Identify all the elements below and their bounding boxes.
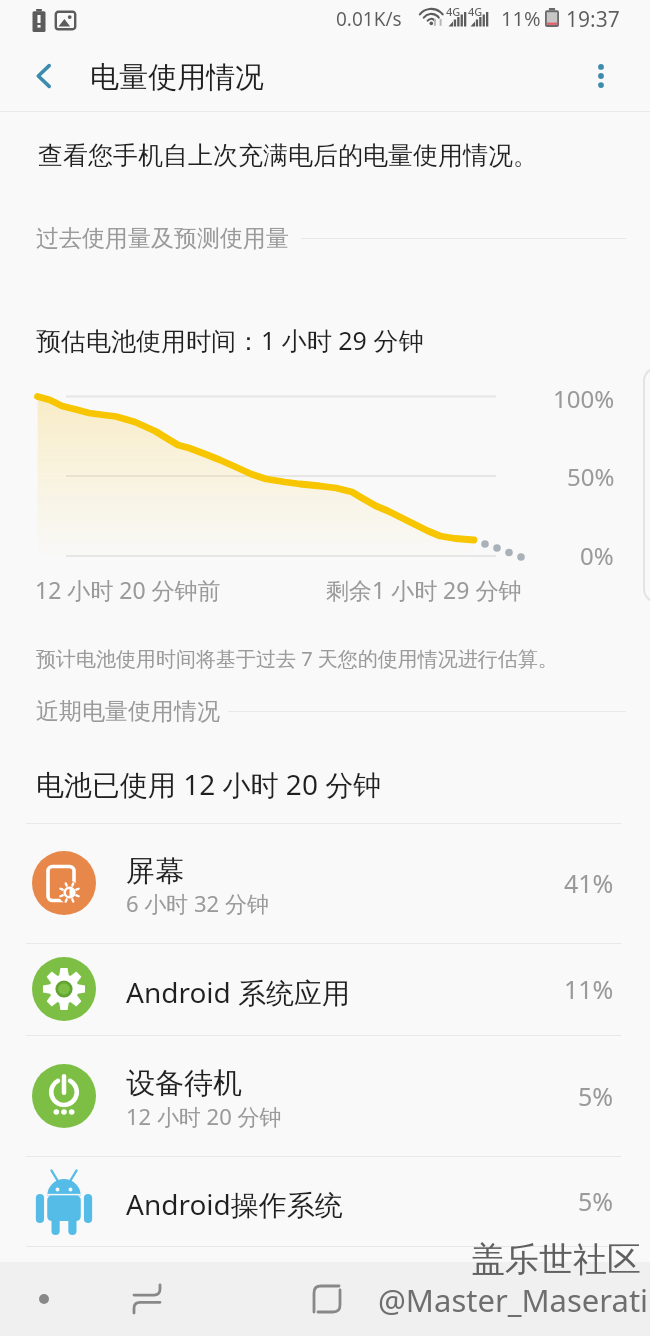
staticText: 100% xyxy=(553,382,615,415)
staticText: 预计电池使用时间将基于过去 7 天您的使用情况进行估算。 xyxy=(36,645,558,672)
staticText: 查看您手机自上次充满电后的电量使用情况。 xyxy=(38,140,538,171)
staticText: 5% xyxy=(578,1184,614,1218)
staticText: 过去使用量及预测使用量 xyxy=(36,224,289,253)
staticText: 41% xyxy=(564,866,614,900)
staticText: 屏幕 xyxy=(126,853,184,890)
staticText: Android操作系统 xyxy=(126,1185,343,1223)
staticText: 19:37 xyxy=(566,5,620,34)
staticText: 12 小时 20 分钟前 xyxy=(35,574,221,605)
button[interactable]: 设备待机 xyxy=(0,1035,650,1156)
button[interactable]: Recents xyxy=(4,1262,84,1336)
button[interactable]: 屏幕 xyxy=(0,823,650,943)
button[interactable]: Back xyxy=(107,1262,187,1336)
staticText: 4G xyxy=(468,4,483,19)
staticText: 50% xyxy=(567,460,615,493)
button[interactable]: More options xyxy=(577,52,625,100)
staticText: 11% xyxy=(564,972,614,1006)
staticText: 12 小时 20 分钟 xyxy=(126,1101,282,1131)
staticText: 0% xyxy=(580,539,614,572)
staticText: @Master_Maserati xyxy=(378,1279,649,1321)
staticText: 近期电量使用情况 xyxy=(36,697,220,726)
staticText: 盖乐世社区 xyxy=(471,1238,641,1281)
staticText: 设备待机 xyxy=(126,1065,242,1102)
staticText: 电池已使用 12 小时 20 分钟 xyxy=(36,765,382,803)
staticText: 剩余1 小时 29 分钟 xyxy=(326,574,522,605)
staticText: 4G xyxy=(446,4,461,19)
button[interactable]: Home xyxy=(287,1262,367,1336)
staticText: 6 小时 32 分钟 xyxy=(126,888,269,918)
staticText: 11% xyxy=(501,5,541,32)
staticText: 电量使用情况 xyxy=(90,59,264,96)
button[interactable]: Android 系统应用 xyxy=(0,943,650,1035)
button[interactable]: Android操作系统 xyxy=(0,1156,650,1246)
staticText: 预估电池使用时间：1 小时 29 分钟 xyxy=(36,323,424,357)
staticText: Android 系统应用 xyxy=(126,973,351,1011)
button[interactable]: Back xyxy=(20,52,68,100)
staticText: 5% xyxy=(578,1079,614,1113)
staticText: 0.01K/s xyxy=(336,6,402,32)
